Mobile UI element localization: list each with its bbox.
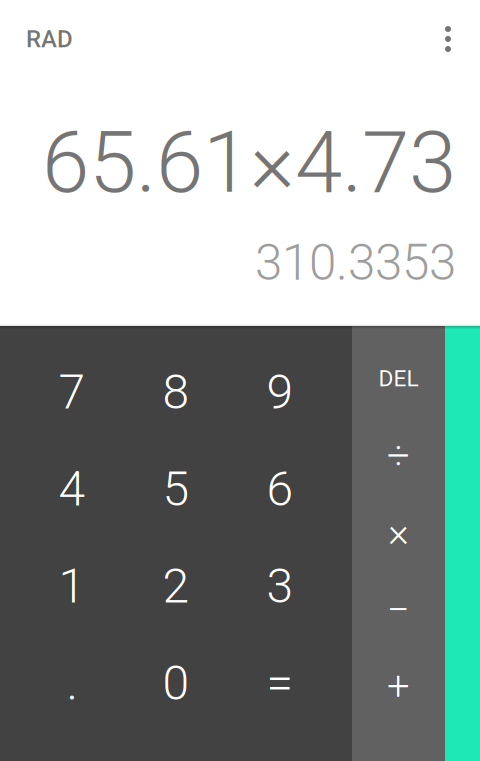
button[interactable]: 4 [0,440,124,537]
button[interactable]: More options [424,17,468,61]
staticText: 9 [266,364,293,420]
button[interactable]: 2 [124,537,228,634]
button[interactable]: − [352,571,445,648]
staticText: 5 [162,461,189,517]
button[interactable]: 3 [228,537,352,634]
staticText: 2 [162,558,189,614]
staticText: + [387,663,410,710]
button[interactable]: 8 [124,343,228,440]
staticText: = [266,655,293,711]
button[interactable]: = [228,634,352,731]
staticText: 3 [266,558,293,614]
button[interactable]: RAD [26,17,73,61]
staticText: 8 [162,364,189,420]
staticText: 6 [266,461,293,517]
button[interactable]: 1 [0,537,124,634]
staticText: 4 [58,461,85,517]
staticText: RAD [26,25,73,53]
button[interactable]: 0 [124,634,228,731]
button[interactable]: . [0,634,124,731]
button[interactable]: DEL [352,340,445,417]
button[interactable]: 6 [228,440,352,537]
staticText: × [388,509,409,556]
button[interactable]: × [352,494,445,571]
button[interactable]: 9 [228,343,352,440]
button[interactable]: + [352,648,445,725]
staticText: 1 [58,558,85,614]
staticText: − [387,586,410,633]
button[interactable]: 7 [0,343,124,440]
button[interactable]: 5 [124,440,228,537]
button[interactable]: ÷ [352,417,445,494]
staticText: DEL [378,365,418,392]
staticText: 310.3353 [255,234,456,292]
staticText: 7 [58,364,85,420]
staticText: . [66,655,77,711]
staticText: 0 [162,655,189,711]
staticText: 65.61×4.73 [42,112,456,212]
staticText: ÷ [387,432,410,479]
